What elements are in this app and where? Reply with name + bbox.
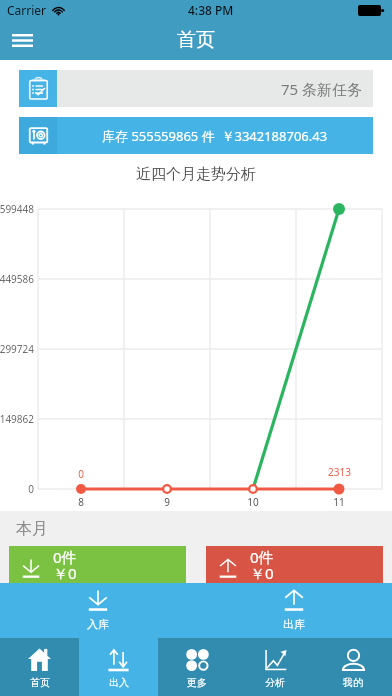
staticText: 分析 [265, 676, 285, 689]
button[interactable]: 入库 [0, 583, 196, 638]
button[interactable]: 库存 555559865 件 ￥3342188706.43 [19, 117, 373, 154]
staticText: 入库 [87, 617, 109, 631]
staticText: 8 [78, 495, 84, 509]
staticText: 449586 [0, 272, 34, 286]
staticText: ￥0 [250, 563, 274, 583]
staticText: 4:38 PM [188, 2, 234, 18]
staticText: 0件 [53, 547, 77, 567]
staticText: 出入 [109, 676, 129, 689]
staticText: 我的 [343, 676, 363, 689]
button[interactable]: 更多 [158, 638, 236, 696]
staticText: 9 [164, 495, 170, 509]
button[interactable]: 75 条新任务 [19, 70, 373, 107]
staticText: 更多 [187, 676, 207, 689]
staticText: 299724 [0, 342, 34, 356]
button[interactable]: 出入 [79, 638, 158, 696]
staticText: 2313 [328, 465, 351, 479]
staticText: ￥0 [53, 563, 77, 583]
staticText: 出库 [283, 617, 305, 631]
staticText: 首页 [30, 676, 50, 689]
staticText: 75 条新任务 [281, 79, 363, 99]
staticText: 本月 [16, 519, 48, 539]
button[interactable]: 分析 [236, 638, 314, 696]
button[interactable]: 首页 [0, 638, 79, 696]
button[interactable]: 我的 [314, 638, 392, 696]
staticText: 近四个月走势分析 [136, 165, 256, 184]
staticText: 149862 [0, 412, 34, 426]
staticText: 599448 [0, 202, 34, 216]
staticText: 0 [28, 482, 34, 496]
staticText: 0 [78, 467, 84, 481]
staticText: Carrier [7, 2, 47, 18]
button[interactable]: Menu [6, 24, 38, 56]
staticText: 10 [247, 495, 259, 509]
staticText: 首页 [177, 28, 215, 52]
button[interactable]: 0件 [206, 546, 383, 596]
staticText: 11 [333, 495, 345, 509]
button[interactable]: 0件 [9, 546, 186, 596]
staticText: 0件 [250, 547, 274, 567]
button[interactable]: 出库 [196, 583, 392, 638]
staticText: 库存 555559865 件 ￥3342188706.43 [102, 127, 328, 145]
